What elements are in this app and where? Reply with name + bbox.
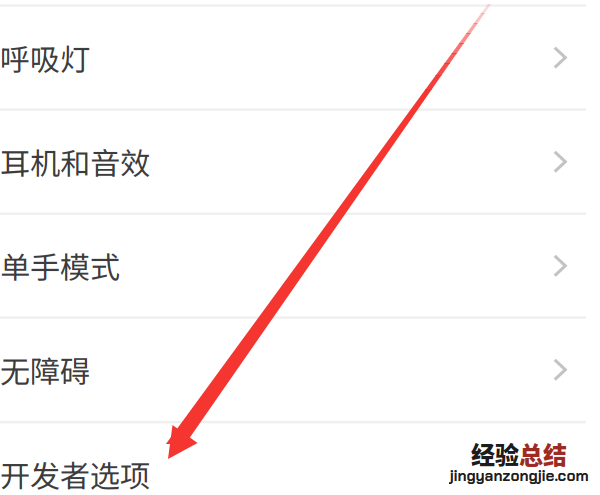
button[interactable]: 耳机和音效 (0, 110, 600, 214)
button[interactable]: 单手模式 (0, 214, 600, 318)
button[interactable]: 呼吸灯 (0, 5, 600, 109)
staticText: 无障碍 (0, 348, 90, 391)
staticText: 呼吸灯 (0, 36, 90, 79)
staticText: jingyanzongjie.com (449, 466, 588, 486)
staticText: 开发者选项 (0, 452, 150, 495)
staticText: 单手模式 (0, 244, 120, 287)
button[interactable]: 无障碍 (0, 318, 600, 422)
staticText: 耳机和音效 (0, 140, 150, 183)
staticText: 经验 (471, 436, 519, 471)
button[interactable]: 开发者选项 (0, 422, 600, 495)
staticText: 总结 (519, 436, 567, 471)
